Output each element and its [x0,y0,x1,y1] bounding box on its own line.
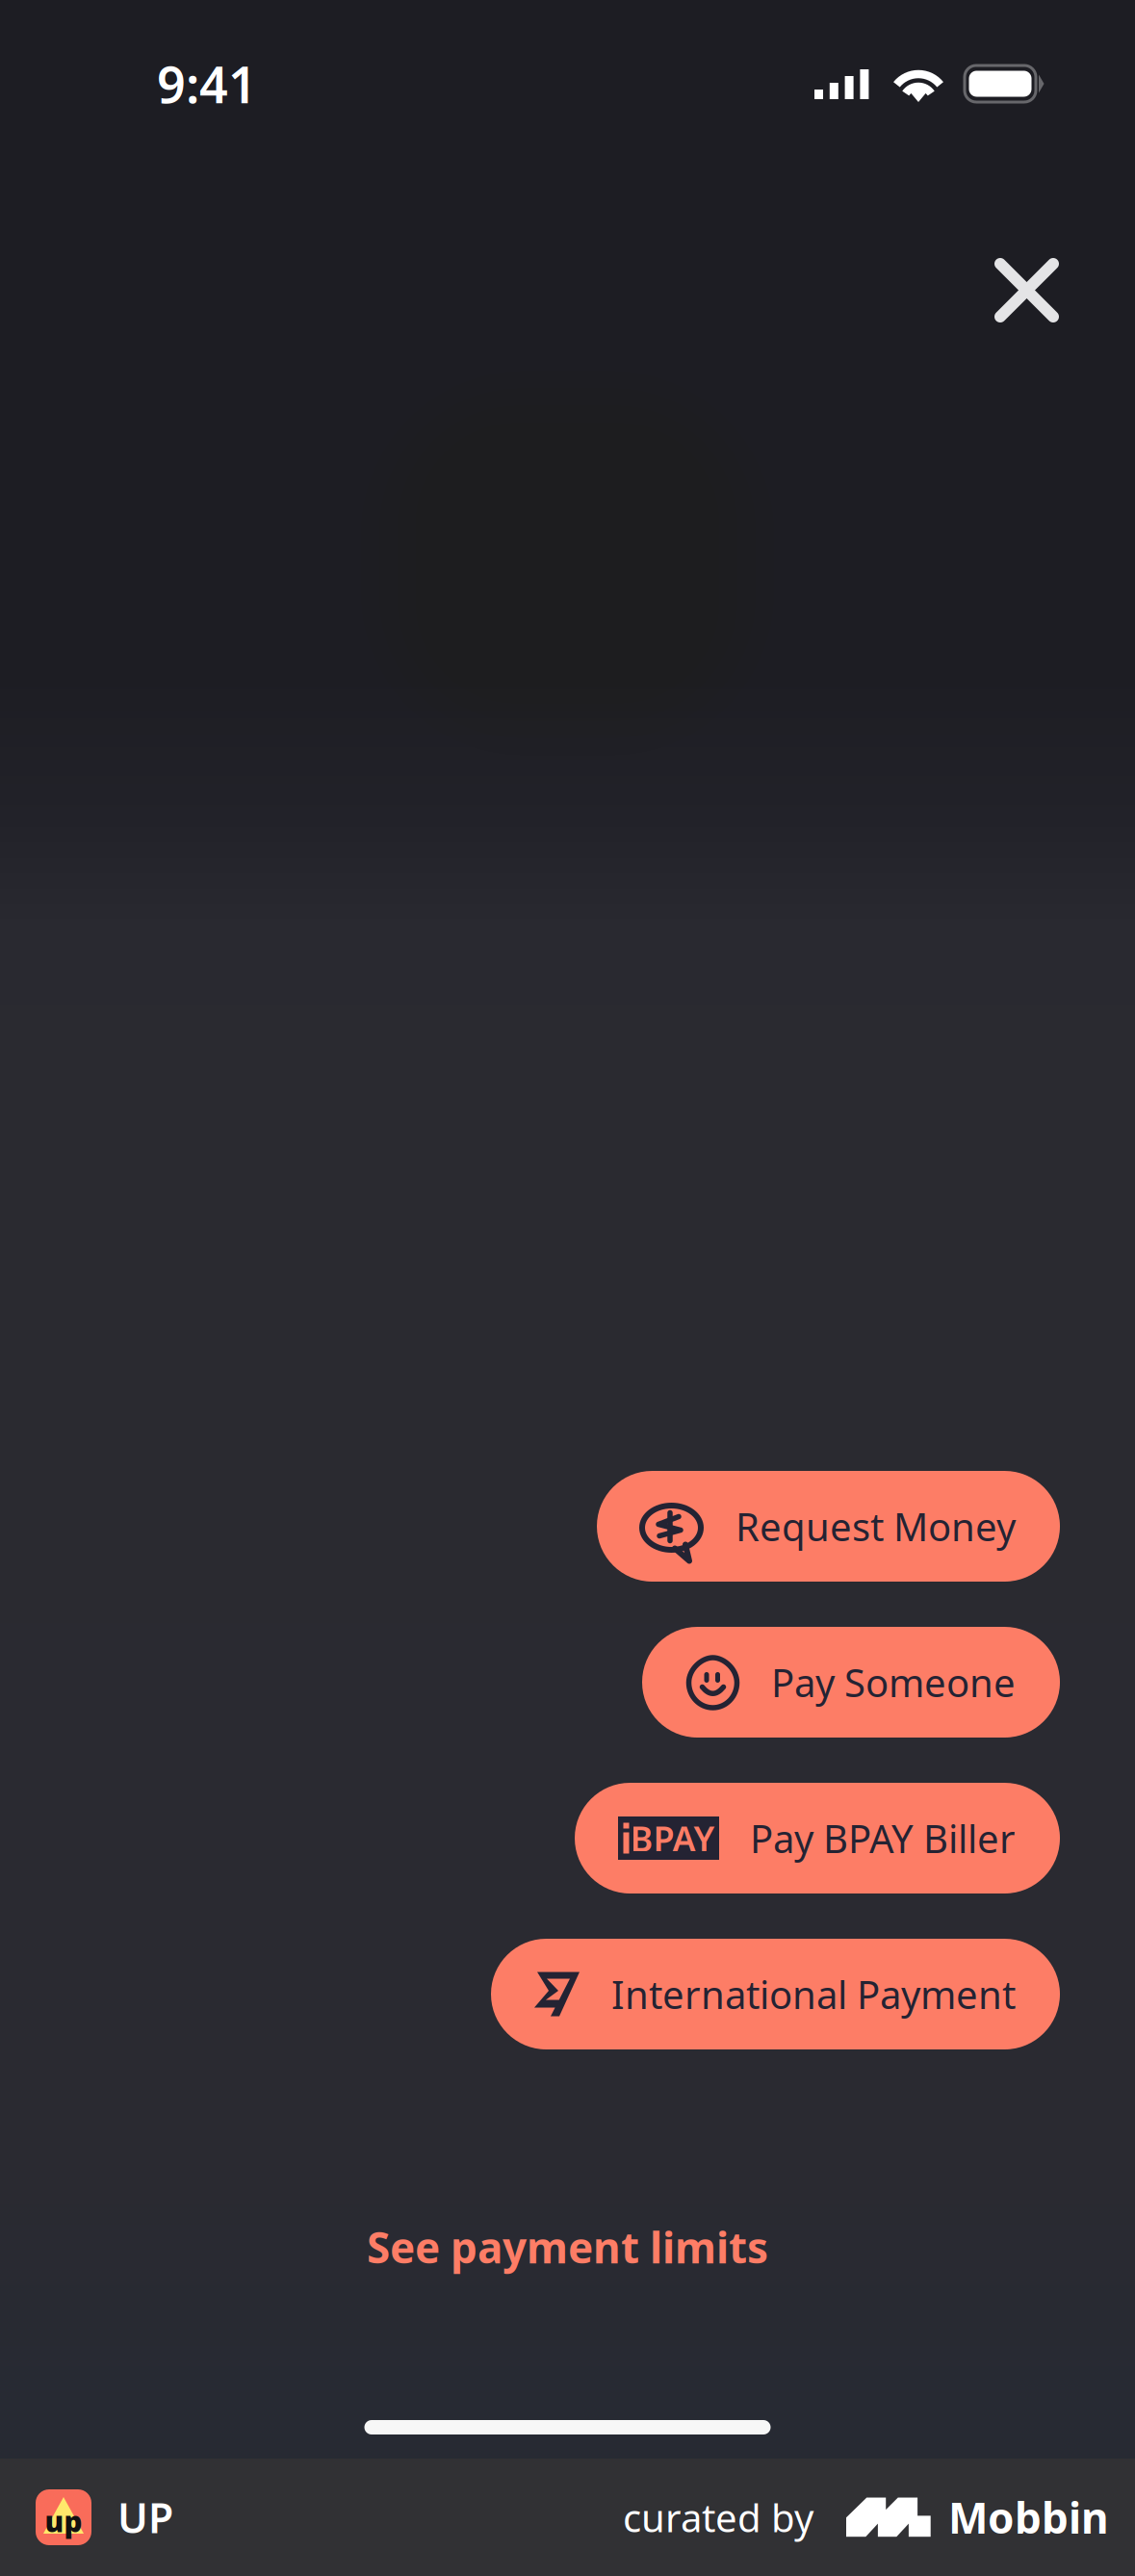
staticText: Pay BPAY Biller [750,1813,1016,1864]
staticText: Pay Someone [771,1657,1016,1708]
staticText: up [45,2502,82,2540]
button[interactable]: Request Money [597,1471,1060,1582]
staticText: Request Money [735,1501,1016,1552]
button[interactable]: Close [971,235,1082,346]
button[interactable]: International Payment [491,1939,1060,2049]
staticText: See payment limits [367,2219,768,2275]
staticText: 9:41 [157,51,257,117]
button[interactable]: See payment limits [344,2203,791,2290]
button[interactable]: Pay Someone [642,1627,1060,1738]
staticText: Mobbin [948,2489,1109,2545]
staticText: UP [117,2490,173,2545]
staticText: BPAY [630,1815,715,1861]
staticText: International Payment [611,1968,1016,2020]
button[interactable]: BPAY [575,1783,1060,1893]
staticText: curated by [623,2492,813,2543]
